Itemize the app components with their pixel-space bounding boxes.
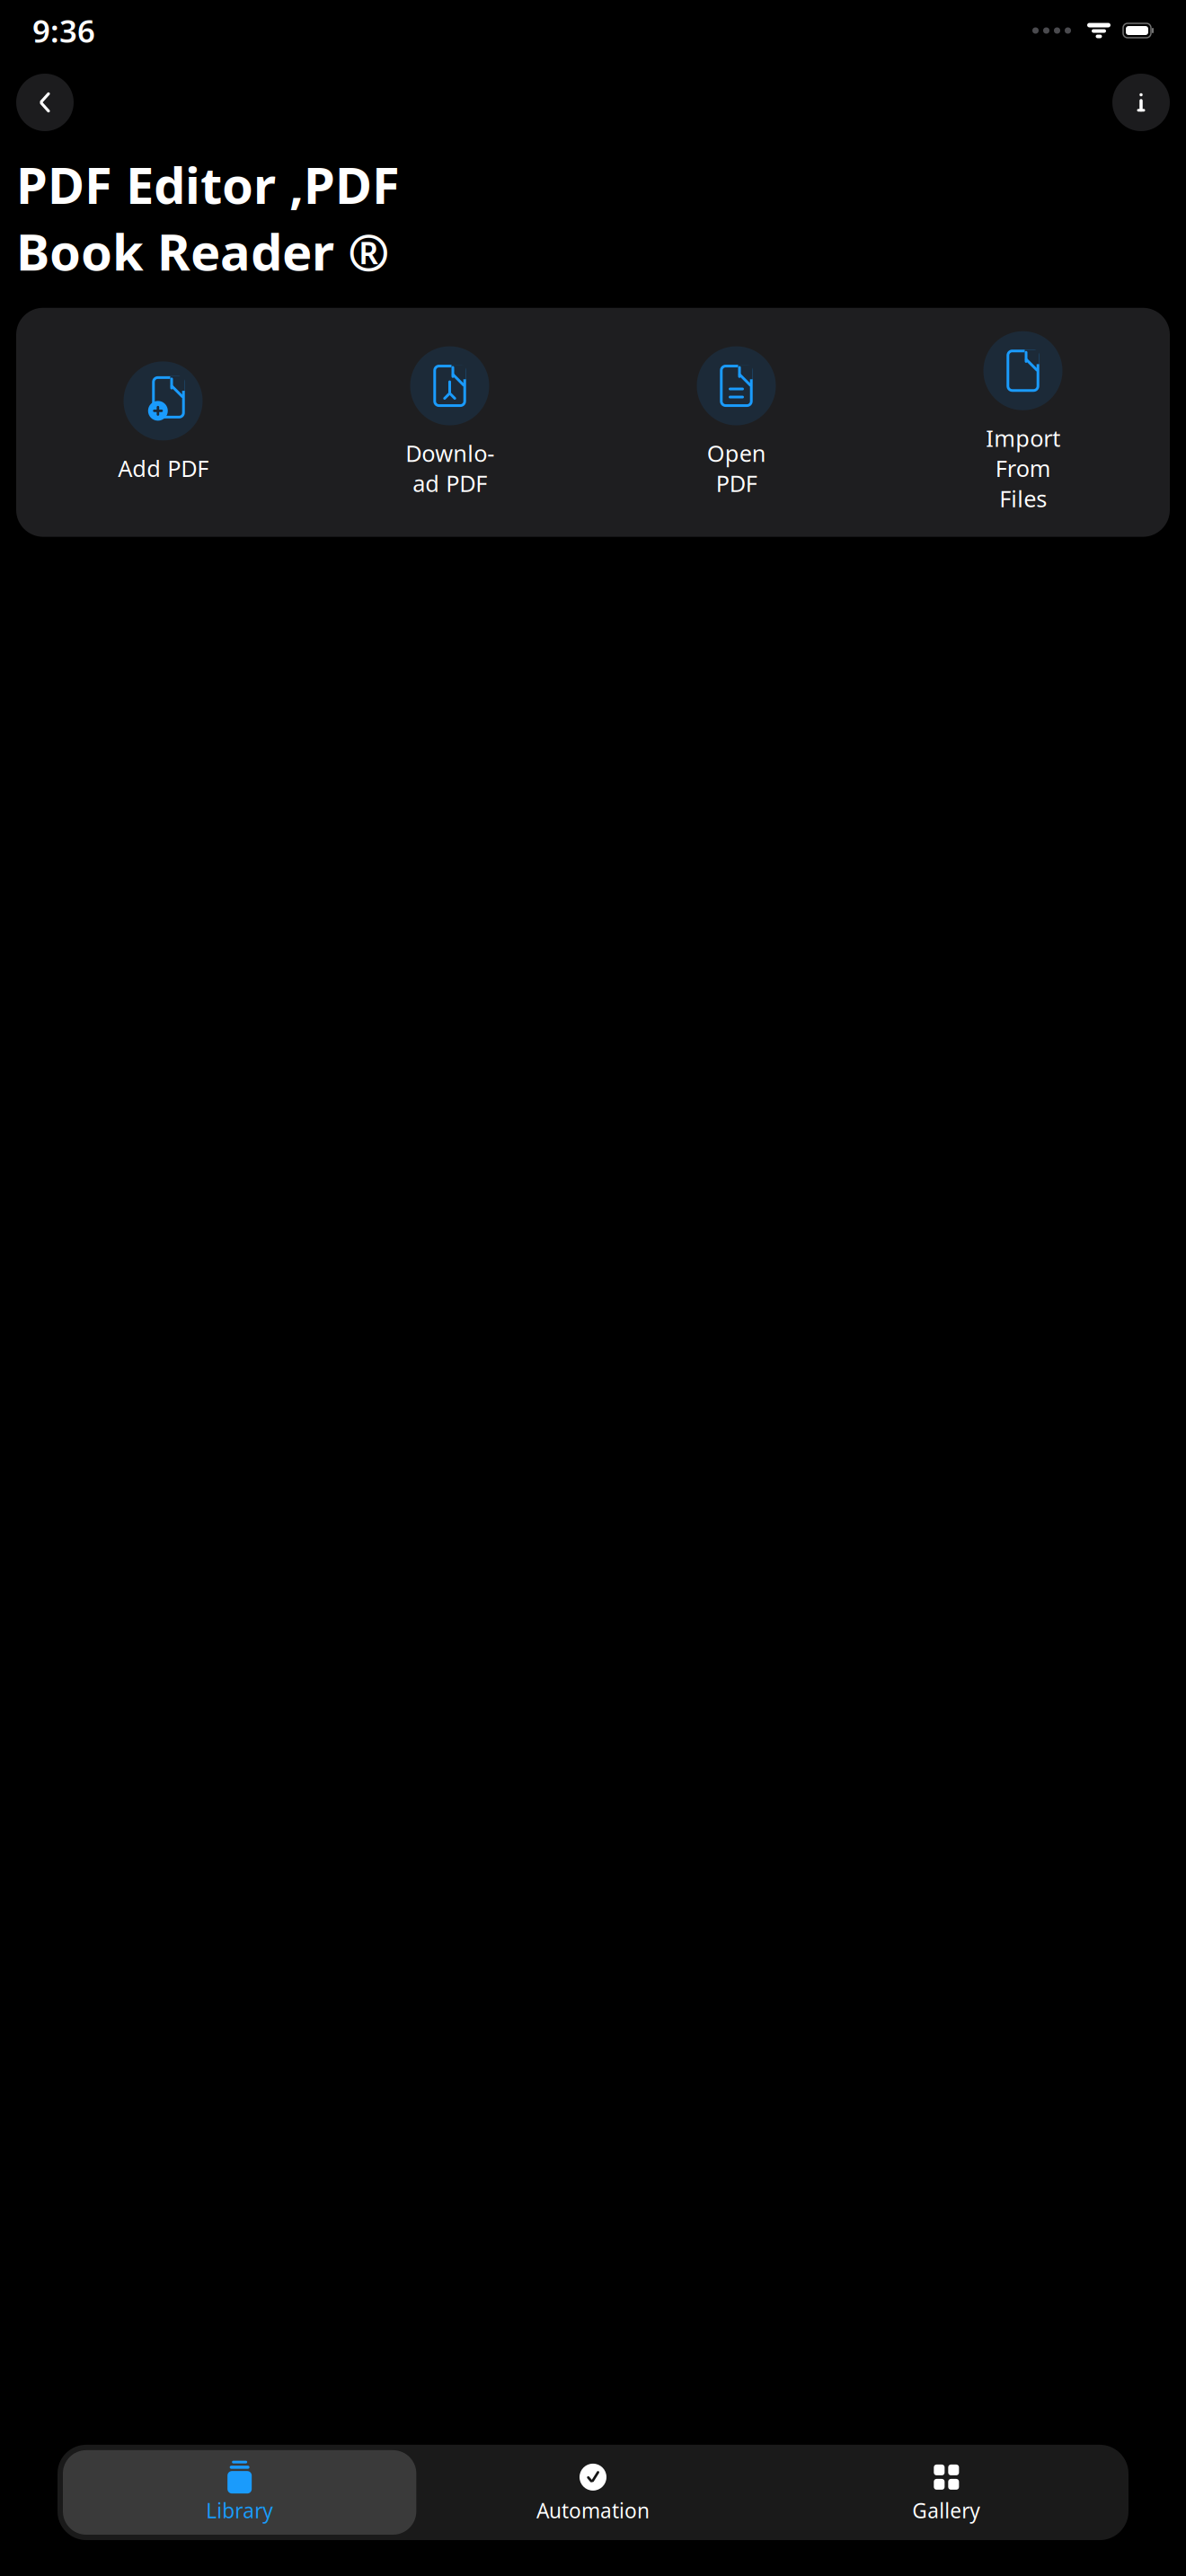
button[interactable]: Library <box>63 2450 416 2535</box>
staticText: Open PDF <box>707 438 766 498</box>
staticText: Gallery <box>912 2497 981 2524</box>
staticText: Add PDF <box>118 453 208 483</box>
staticText: Download PDF <box>405 438 494 498</box>
staticText: Import From Files <box>986 423 1060 513</box>
button[interactable]: Gallery <box>770 2450 1123 2535</box>
staticText: Book Reader ® <box>16 218 390 285</box>
staticText: Automation <box>536 2497 650 2524</box>
button[interactable]: Import From Files <box>880 328 1166 517</box>
button[interactable]: Add PDF <box>20 358 306 487</box>
button[interactable]: Back <box>16 74 74 131</box>
staticText: 9:36 <box>32 10 95 51</box>
button[interactable]: Download PDF <box>306 343 593 502</box>
button[interactable]: Open PDF <box>593 343 880 502</box>
button[interactable]: Information <box>1112 74 1170 131</box>
staticText: PDF Editor ,PDF <box>16 151 400 218</box>
staticText: Library <box>206 2497 273 2524</box>
button[interactable]: Automation <box>416 2450 770 2535</box>
